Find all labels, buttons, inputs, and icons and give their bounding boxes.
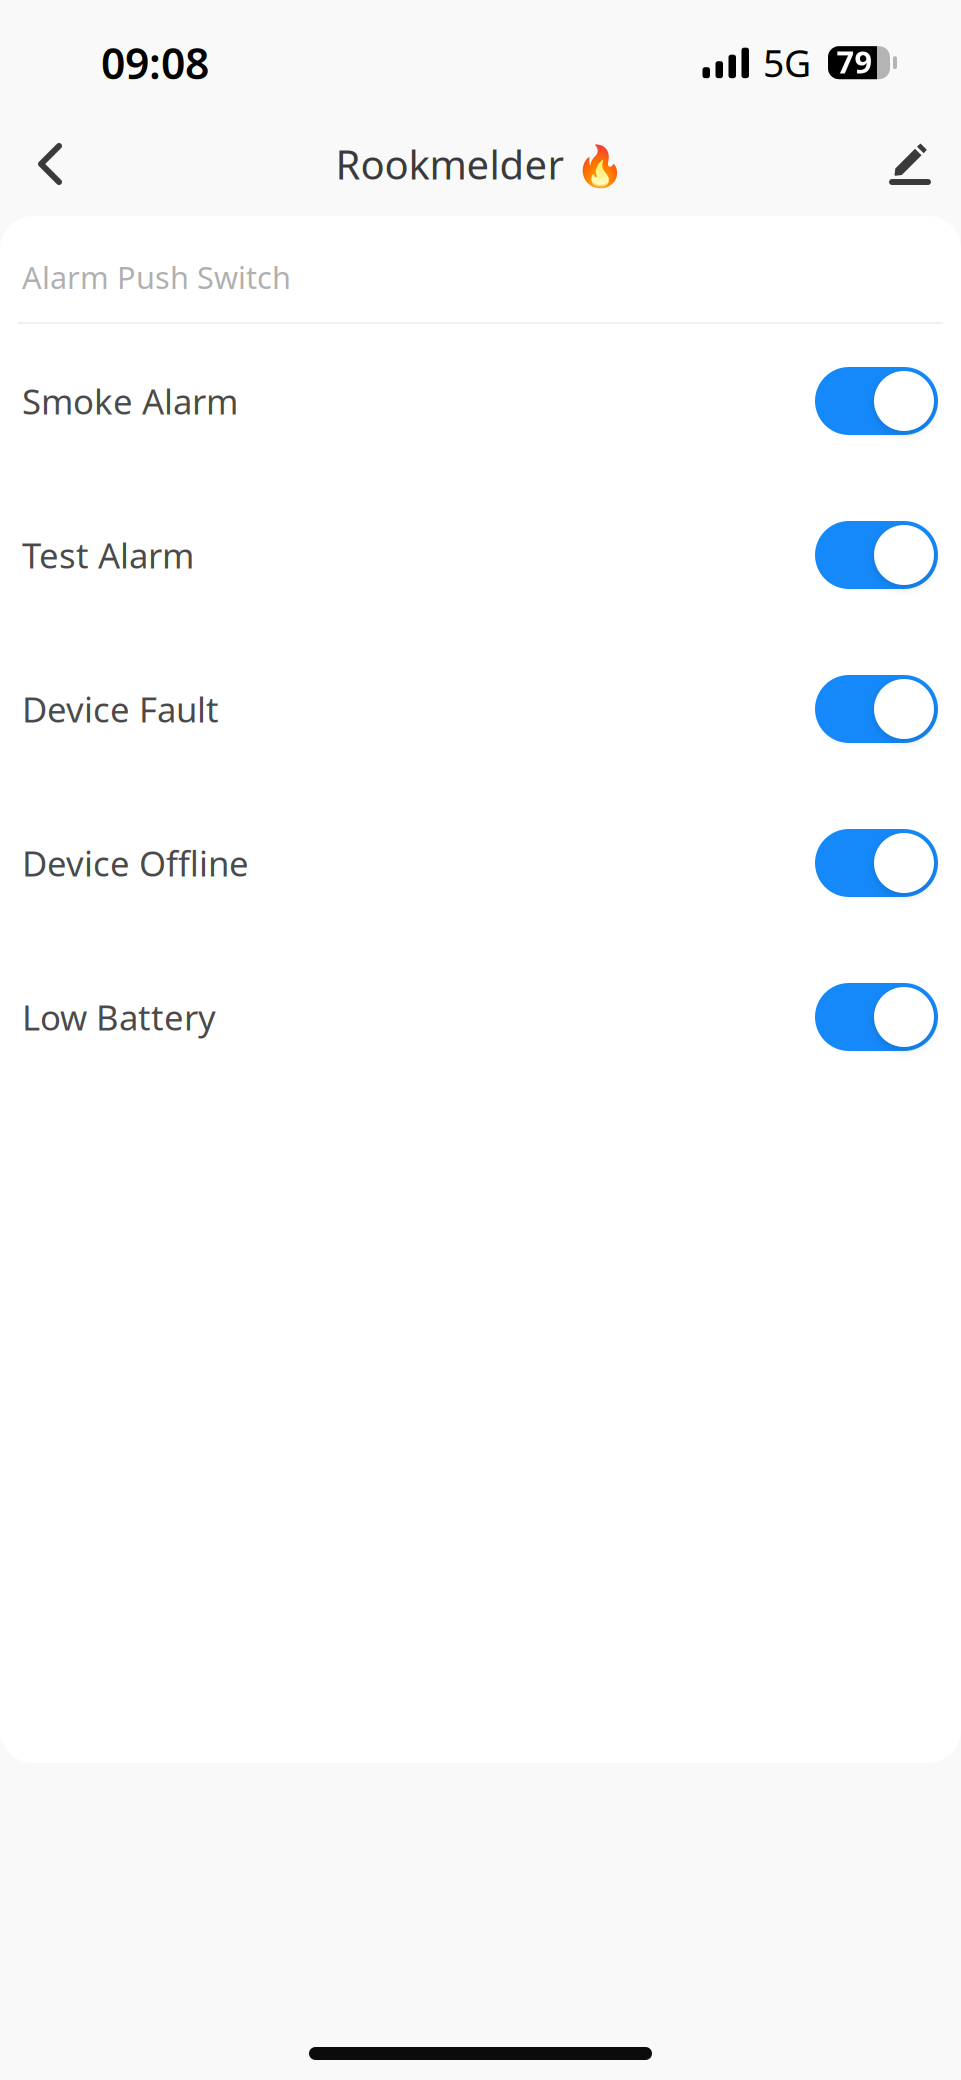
staticText: Device Offline: [22, 840, 249, 886]
staticText: 09:08: [101, 34, 209, 91]
staticText: 5G: [763, 38, 811, 87]
button[interactable]: Low Battery: [0, 940, 961, 1094]
staticText: Low Battery: [22, 994, 216, 1040]
staticText: Device Fault: [22, 686, 219, 732]
button[interactable]: Device Fault: [0, 632, 961, 786]
staticText: Test Alarm: [22, 532, 194, 578]
staticText: Rookmelder 🔥: [335, 137, 624, 190]
staticText: Alarm Push Switch: [22, 257, 291, 297]
button[interactable]: Smoke Alarm: [0, 324, 961, 478]
button[interactable]: Edit: [878, 116, 942, 212]
staticText: Smoke Alarm: [22, 378, 238, 424]
button[interactable]: Test Alarm: [0, 478, 961, 632]
button[interactable]: Device Offline: [0, 786, 961, 940]
button[interactable]: Back: [18, 116, 82, 212]
staticText: 79: [836, 41, 872, 82]
